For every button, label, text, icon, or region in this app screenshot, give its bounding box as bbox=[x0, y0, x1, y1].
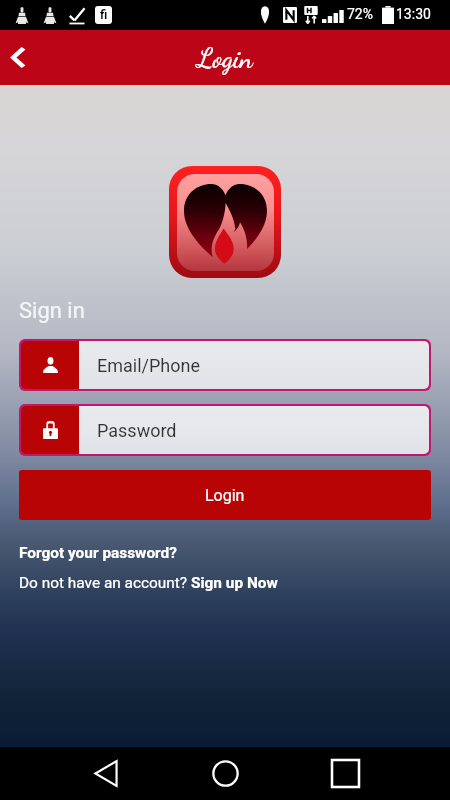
staticText: Login bbox=[205, 486, 245, 505]
button[interactable]: Home bbox=[201, 747, 249, 800]
button[interactable]: Email/Phone bbox=[21, 341, 429, 389]
staticText: fi bbox=[100, 8, 108, 22]
staticText: 72% bbox=[347, 6, 373, 22]
button[interactable]: Recent apps bbox=[320, 747, 368, 800]
button[interactable]: Do not have an account? bbox=[19, 574, 278, 592]
staticText: Do not have an account? bbox=[19, 574, 191, 592]
button[interactable]: Back bbox=[0, 30, 40, 85]
staticText: Login bbox=[197, 42, 253, 74]
button[interactable]: Forgot your password? bbox=[19, 544, 177, 562]
button[interactable]: Login bbox=[19, 470, 431, 520]
button[interactable]: Back bbox=[82, 747, 130, 800]
staticText: Password bbox=[97, 420, 177, 441]
staticText: Sign in bbox=[19, 298, 85, 324]
button[interactable]: Password bbox=[21, 406, 429, 454]
staticText: 13:30 bbox=[396, 6, 431, 22]
staticText: Sign up Now bbox=[191, 574, 278, 592]
staticText: Email/Phone bbox=[97, 355, 201, 376]
